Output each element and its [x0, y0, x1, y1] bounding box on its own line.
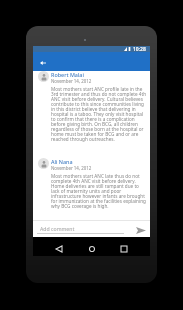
button[interactable]: Back: [52, 242, 66, 256]
staticText: Add comment: [40, 225, 75, 232]
button[interactable]: Send: [127, 221, 150, 237]
button[interactable]: Back: [33, 52, 52, 71]
staticText: Ali Nana: [51, 158, 73, 165]
staticText: Robert Malai: [51, 71, 84, 78]
staticText: November 14, 2012: [51, 165, 92, 171]
staticText: Most mothers start ANC late thus do not …: [51, 173, 146, 210]
button[interactable]: Recents: [117, 242, 131, 256]
staticText: November 14, 2012: [51, 78, 92, 84]
button[interactable]: Home: [85, 242, 99, 256]
staticText: 10:28: [133, 46, 146, 52]
staticText: Most mothers start ANC profile late in t…: [51, 86, 147, 143]
